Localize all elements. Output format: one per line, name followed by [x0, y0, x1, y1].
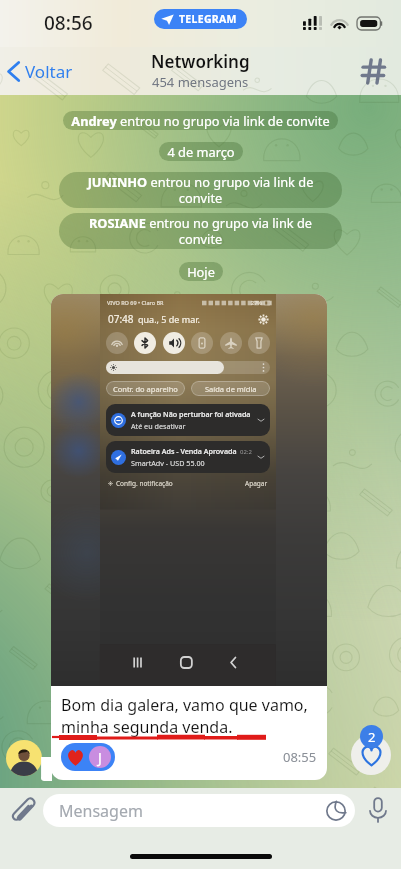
- staticText: Saída de mídia: [205, 384, 257, 394]
- staticText: Contr. do aparelho: [113, 384, 178, 394]
- button[interactable]: A função Não perturbar foi ativada: [106, 404, 270, 436]
- staticText: Mensagem: [59, 800, 143, 822]
- button[interactable]: Hashtag: [346, 49, 401, 94]
- staticText: Networking: [151, 50, 250, 73]
- staticText: qua., 5 de mar.: [138, 313, 200, 325]
- button[interactable]: Contr. do aparelho: [106, 381, 185, 396]
- button[interactable]: J: [61, 743, 115, 771]
- button[interactable]: Toggle: [163, 332, 185, 354]
- staticText: VIVO RO 69 • Claro BR: [107, 299, 164, 306]
- staticText: 2: [368, 728, 376, 746]
- staticText: J: [98, 748, 102, 767]
- staticText: 454 mensagens: [152, 73, 249, 91]
- staticText: 27%: [251, 299, 262, 306]
- staticText: SmartAdv - USD 55.00: [131, 458, 205, 468]
- staticText: 08:55: [283, 748, 317, 766]
- staticText: 02:29: [240, 448, 254, 456]
- staticText: Hoje: [187, 263, 215, 280]
- staticText: TELEGRAM: [179, 12, 237, 26]
- button[interactable]: Settings: [257, 313, 269, 325]
- button[interactable]: Avatar: [6, 740, 42, 776]
- staticText: A função Não perturbar foi ativada: [131, 409, 251, 419]
- button[interactable]: Mensagem: [43, 794, 355, 827]
- button[interactable]: Saída de mídia: [191, 381, 270, 396]
- staticText: Apagar: [245, 479, 268, 488]
- button[interactable]: Ratoeira Ads - Venda Aprovada: [106, 441, 270, 473]
- staticText: Até eu desativar: [131, 421, 186, 431]
- button[interactable]: Voltar: [0, 54, 81, 89]
- button[interactable]: Toggle: [191, 332, 213, 354]
- button[interactable]: React with heart: [351, 735, 391, 775]
- button[interactable]: Voice message: [359, 791, 397, 829]
- button[interactable]: Toggle: [106, 332, 128, 354]
- button[interactable]: Toggle: [220, 332, 242, 354]
- staticText: ROSIANE entrou no grupo via link de conv…: [67, 214, 334, 248]
- button[interactable]: Stickers: [324, 799, 348, 823]
- staticText: JUNINHO entrou no grupo via link de conv…: [67, 173, 334, 207]
- staticText: Andrey entrou no grupo via link de convi…: [71, 112, 330, 129]
- button[interactable]: Toggle: [134, 332, 156, 354]
- staticText: 08:56: [44, 10, 93, 36]
- staticText: Bom dia galera, vamo que vamo, minha seg…: [61, 694, 317, 738]
- staticText: 4 de março: [167, 143, 235, 160]
- staticText: 07:48: [108, 312, 134, 326]
- button[interactable]: Attach: [4, 791, 42, 829]
- staticText: Config. notificação: [116, 479, 173, 488]
- staticText: Ratoeira Ads - Venda Aprovada: [131, 446, 237, 456]
- staticText: Voltar: [25, 60, 73, 83]
- button[interactable]: Toggle: [248, 332, 270, 354]
